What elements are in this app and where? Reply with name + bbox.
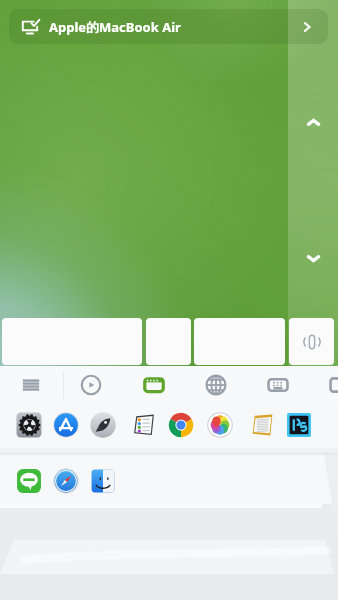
button[interactable]: More: [329, 374, 338, 396]
button[interactable]: Stickies: [249, 412, 275, 438]
button[interactable]: Scroll down: [306, 251, 321, 266]
button[interactable]: Web: [205, 374, 227, 396]
button[interactable]: Safari: [53, 468, 79, 494]
button[interactable]: Menu: [20, 374, 42, 396]
button[interactable]: [194, 318, 285, 365]
button[interactable]: Photos: [207, 412, 233, 438]
button[interactable]: App Store: [53, 412, 79, 438]
button[interactable]: Chrome: [168, 412, 194, 438]
button[interactable]: Apple的MacBook Air: [9, 9, 328, 44]
button[interactable]: [2, 318, 142, 365]
button[interactable]: System Preferences: [16, 412, 42, 438]
button[interactable]: Reminders: [131, 412, 157, 438]
staticText: Apple的MacBook Air: [49, 18, 181, 36]
button[interactable]: Scroll up: [306, 115, 321, 130]
button[interactable]: Launchpad: [90, 412, 116, 438]
button[interactable]: Play: [80, 374, 102, 396]
button[interactable]: [146, 318, 191, 365]
button[interactable]: Keyboard: [267, 374, 289, 396]
button[interactable]: LINE: [16, 468, 42, 494]
button[interactable]: Window: [143, 374, 165, 396]
button[interactable]: Photoshop: [286, 412, 312, 438]
button[interactable]: [289, 318, 334, 365]
button[interactable]: Finder: [90, 468, 116, 494]
